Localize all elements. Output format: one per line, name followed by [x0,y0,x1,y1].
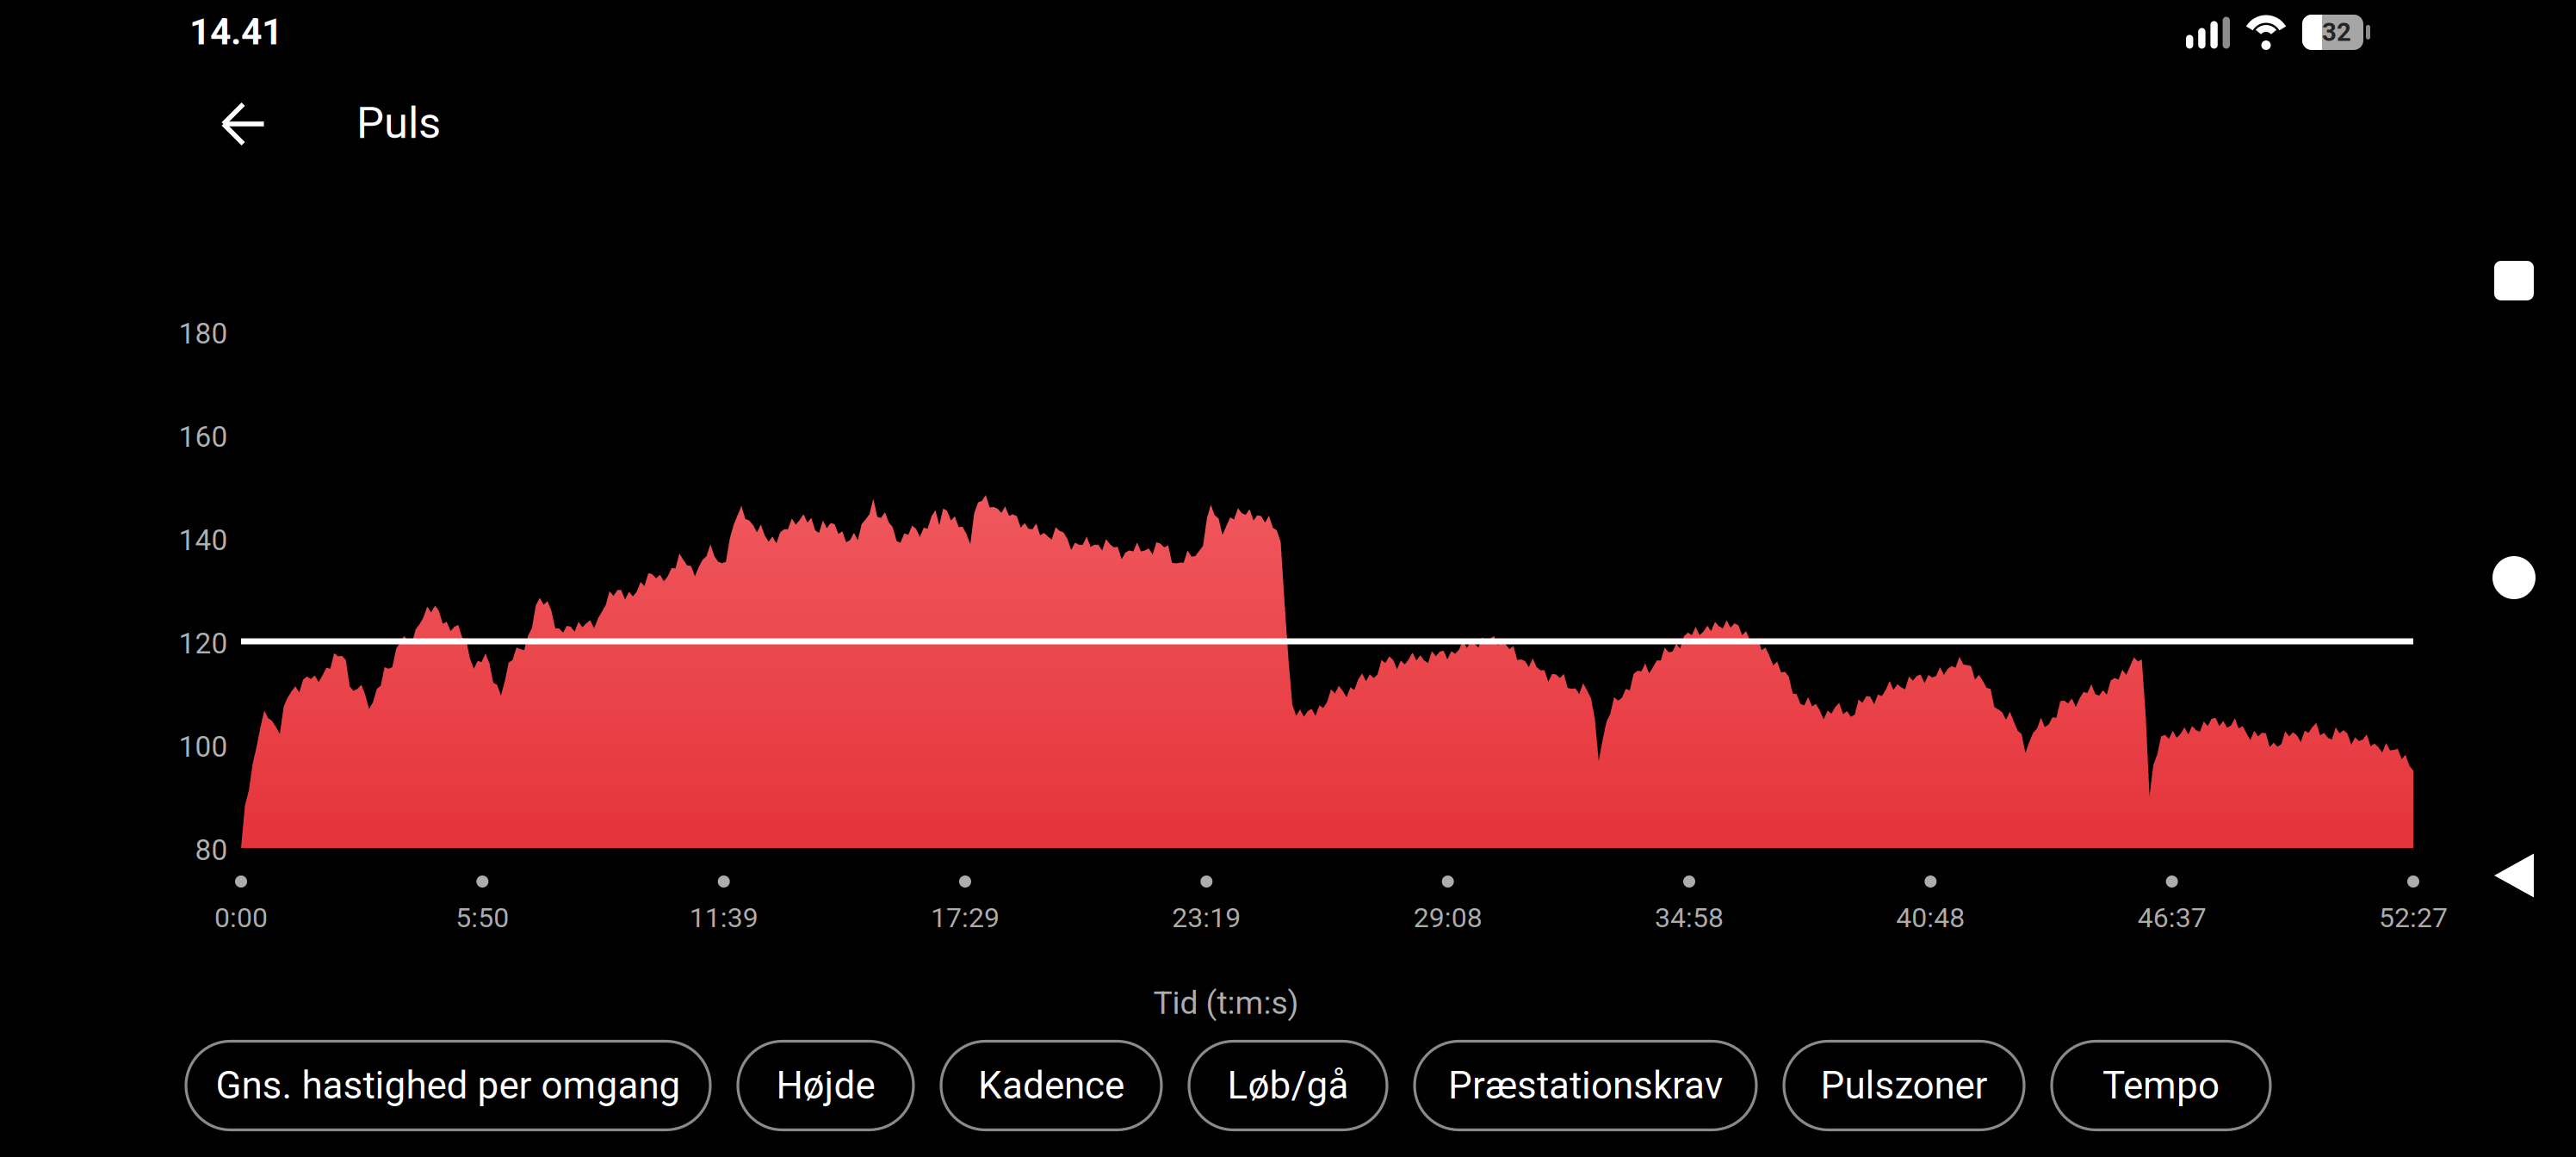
staticText: 11:39 [689,901,758,934]
staticText: 180 [179,317,228,350]
button[interactable]: Løb/gå [1189,1041,1387,1130]
button[interactable]: Kadence [941,1041,1161,1130]
button[interactable]: Recents [2454,220,2574,341]
staticText: 23:19 [1172,901,1241,934]
button[interactable]: Højde [738,1041,913,1130]
button[interactable]: Tempo [2052,1041,2270,1130]
staticText: 17:29 [931,901,1000,934]
staticText: 14.41 [189,10,282,53]
button[interactable]: Home [2454,517,2574,638]
button[interactable]: Back [2454,815,2574,936]
staticText: 100 [179,730,228,764]
button[interactable]: Præstationskrav [1415,1041,1756,1130]
staticText: Gns. hastighed per omgang [216,1063,681,1108]
staticText: Pulszoner [1821,1063,1988,1108]
staticText: 0:00 [214,901,268,934]
staticText: 46:37 [2138,901,2206,934]
staticText: Kadence [978,1063,1124,1108]
button[interactable]: Pulszoner [1784,1041,2024,1130]
staticText: 140 [179,523,228,557]
staticText: 160 [179,420,228,454]
staticText: 120 [179,627,228,660]
staticText: Højde [776,1063,875,1108]
staticText: 32 [2322,17,2351,47]
staticText: Løb/gå [1227,1063,1349,1108]
button[interactable]: Back [203,83,285,165]
staticText: Puls [356,98,441,149]
staticText: 34:58 [1655,901,1724,934]
staticText: 40:48 [1896,901,1965,934]
button[interactable]: Gns. hastighed per omgang [186,1041,710,1130]
staticText: Tempo [2102,1063,2220,1108]
staticText: 29:08 [1413,901,1482,934]
staticText: 80 [195,833,228,867]
staticText: 52:27 [2379,901,2448,934]
staticText: Tid (t:m:s) [1153,984,1299,1022]
staticText: 5:50 [456,901,509,934]
staticText: Præstationskrav [1448,1063,1723,1108]
